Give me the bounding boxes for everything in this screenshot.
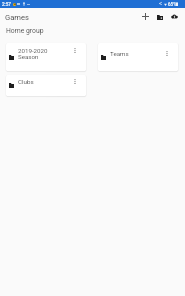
button[interactable]: More options <box>161 48 172 59</box>
button[interactable]: Clubs <box>6 75 86 96</box>
staticText: Clubs <box>18 78 64 85</box>
button[interactable]: More options <box>69 76 80 87</box>
staticText: Games <box>5 13 29 22</box>
staticText: Teams <box>110 50 156 57</box>
button[interactable]: More options <box>69 45 80 56</box>
button[interactable]: Teams <box>98 43 178 71</box>
staticText: Home group <box>6 27 44 35</box>
staticText: 2:57 <box>2 2 11 7</box>
staticText: 2019-2020 Season <box>18 47 64 61</box>
staticText: 65% <box>168 2 177 7</box>
button[interactable]: Upload <box>168 10 181 23</box>
button[interactable]: New folder <box>153 11 166 24</box>
button[interactable]: Add <box>139 10 152 23</box>
button[interactable]: 2019-2020 Season <box>6 43 86 71</box>
